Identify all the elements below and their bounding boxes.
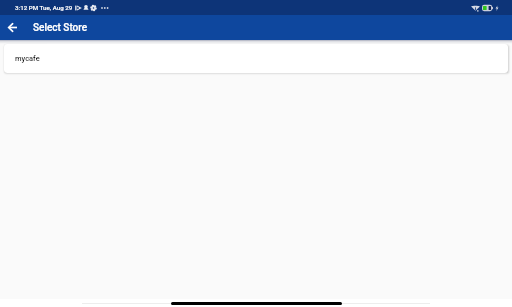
button[interactable]: Back: [0, 15, 25, 40]
staticText: mycafe: [15, 54, 40, 63]
staticText: 3:12 PM Tue, Aug 29: [15, 4, 73, 11]
staticText: Select Store: [33, 22, 88, 34]
button[interactable]: mycafe: [4, 44, 508, 73]
other: Home: [171, 302, 342, 305]
